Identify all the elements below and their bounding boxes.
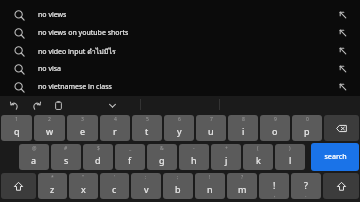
staticText: -	[193, 145, 195, 152]
staticText: ?	[241, 174, 244, 181]
staticText: a	[31, 154, 37, 166]
staticText: d	[95, 154, 101, 166]
button[interactable]: '	[100, 173, 129, 199]
staticText: _	[129, 145, 132, 152]
button[interactable]: Insert suggestion	[326, 6, 360, 24]
staticText: .	[305, 191, 307, 199]
button[interactable]: 1	[1, 115, 32, 141]
staticText: f	[128, 154, 132, 166]
staticText: n	[207, 183, 213, 195]
staticText: !	[273, 179, 276, 191]
staticText: l	[289, 154, 292, 166]
button[interactable]: Emoji	[323, 173, 359, 199]
button[interactable]: Insert suggestion	[326, 60, 360, 78]
button[interactable]: :	[131, 173, 161, 199]
button[interactable]: 5	[132, 115, 162, 141]
staticText: *	[51, 174, 54, 181]
button[interactable]: 9	[260, 115, 290, 141]
button[interactable]: @	[19, 144, 49, 170]
staticText: no video input ดำไม่มีไร	[38, 46, 326, 57]
button[interactable]: 7	[196, 115, 226, 141]
staticText: t	[145, 125, 149, 137]
staticText: w	[46, 125, 54, 137]
staticText: 7	[210, 116, 213, 123]
button[interactable]: Insert suggestion	[326, 42, 360, 60]
button[interactable]: 4	[100, 115, 130, 141]
button[interactable]: no visa	[0, 60, 360, 78]
button[interactable]: _	[115, 144, 145, 170]
staticText: 6	[178, 116, 181, 123]
staticText: 8	[242, 116, 245, 123]
button[interactable]: !	[195, 173, 225, 199]
staticText: 4	[114, 116, 117, 123]
staticText: y	[177, 125, 182, 137]
button[interactable]: Backspace	[324, 115, 359, 141]
button[interactable]: (	[243, 144, 273, 170]
staticText: s	[64, 154, 69, 166]
staticText: g	[159, 154, 165, 166]
button[interactable]: Insert suggestion	[326, 78, 360, 96]
button[interactable]: 2	[34, 115, 65, 141]
staticText: (	[257, 145, 259, 152]
staticText: +	[225, 145, 228, 152]
button[interactable]: ?	[291, 173, 321, 199]
button[interactable]: -	[179, 144, 209, 170]
button[interactable]: no video input ดำไม่มีไร	[0, 42, 360, 60]
staticText: o	[272, 125, 278, 137]
staticText: "	[82, 174, 85, 181]
button[interactable]: Shift	[1, 173, 36, 199]
button[interactable]: Insert suggestion	[326, 24, 360, 42]
button[interactable]: Clipboard	[50, 97, 66, 113]
staticText: no views on youtube shorts	[38, 28, 326, 38]
button[interactable]: no vietnamese in class	[0, 78, 360, 96]
staticText: p	[304, 125, 310, 137]
button[interactable]: !	[259, 173, 289, 199]
staticText: 3	[81, 116, 84, 123]
button[interactable]: ?	[227, 173, 257, 199]
staticText: ;	[177, 174, 179, 181]
staticText: z	[50, 183, 55, 195]
staticText: v	[144, 183, 149, 195]
button[interactable]: Undo	[6, 97, 22, 113]
button[interactable]: 0	[292, 115, 322, 141]
staticText: 1	[15, 116, 18, 123]
staticText: no vietnamese in class	[38, 82, 326, 92]
staticText: u	[208, 125, 214, 137]
button[interactable]: #	[51, 144, 81, 170]
button[interactable]: Expand	[104, 97, 120, 113]
staticText: x	[81, 183, 86, 195]
button[interactable]: Redo	[28, 97, 44, 113]
button[interactable]: 6	[164, 115, 194, 141]
button[interactable]: ;	[163, 173, 193, 199]
staticText: q	[14, 125, 20, 137]
button[interactable]: no views	[0, 6, 360, 24]
staticText: c	[112, 183, 117, 195]
staticText: 0	[306, 116, 309, 123]
button[interactable]: 3	[67, 115, 98, 141]
staticText: no visa	[38, 64, 326, 74]
staticText: :	[145, 174, 147, 181]
staticText: '	[114, 174, 116, 181]
staticText: 9	[274, 116, 277, 123]
staticText: !	[209, 174, 211, 181]
button[interactable]: $	[83, 144, 113, 170]
staticText: j	[225, 154, 228, 166]
staticText: &	[160, 145, 164, 152]
button[interactable]: 8	[228, 115, 258, 141]
staticText: $	[97, 145, 100, 152]
button[interactable]: &	[147, 144, 177, 170]
button[interactable]: )	[275, 144, 305, 170]
staticText: search	[324, 152, 347, 162]
button[interactable]: +	[211, 144, 241, 170]
staticText: e	[80, 125, 86, 137]
staticText: h	[191, 154, 197, 166]
staticText: @	[32, 145, 37, 152]
button[interactable]: no views on youtube shorts	[0, 24, 360, 42]
button[interactable]: "	[69, 173, 98, 199]
button[interactable]: search	[311, 143, 359, 171]
button[interactable]: *	[38, 173, 67, 199]
staticText: m	[238, 183, 247, 195]
staticText: #	[64, 145, 68, 152]
staticText: b	[175, 183, 181, 195]
staticText: i	[242, 125, 245, 137]
